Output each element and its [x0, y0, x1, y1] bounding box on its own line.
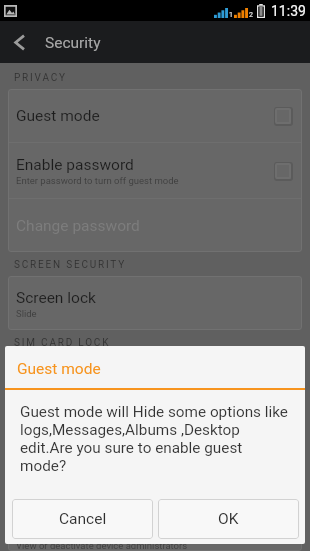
button[interactable]: Screen lock — [8, 276, 302, 330]
button[interactable]: Change password — [8, 199, 302, 252]
staticText: OK — [218, 510, 239, 528]
button[interactable]: Cancel — [12, 499, 153, 539]
staticText: Guest mode — [17, 360, 101, 378]
staticText: View or deactivate device administrators — [16, 540, 188, 551]
staticText: Guest mode will Hide some options like l… — [20, 403, 288, 475]
staticText: Change SIM PIN — [16, 444, 129, 462]
staticText: Enter password to turn off guest mode — [16, 175, 179, 186]
button[interactable]: Guest mode — [8, 89, 302, 142]
staticText: DEVICE ADMINISTRATION — [14, 502, 169, 514]
staticText: 1 — [229, 11, 233, 19]
button[interactable]: Change SIM PIN — [8, 410, 302, 495]
staticText: Set up SIM card lock — [16, 367, 158, 385]
staticText: SIM CARD LOCK — [14, 337, 111, 349]
staticText: Enable password — [16, 156, 134, 174]
staticText: Screen lock — [16, 289, 96, 307]
staticText: SCREEN SECURITY — [14, 259, 126, 271]
staticText: Security — [45, 34, 101, 52]
button[interactable]: Device administrators — [8, 519, 302, 551]
staticText: 2 — [249, 11, 253, 19]
staticText: Change password — [16, 217, 140, 235]
staticText: Lock SIM card — [16, 386, 77, 397]
button[interactable]: Back — [0, 21, 40, 63]
button[interactable]: Enable password — [8, 143, 302, 198]
button[interactable]: OK — [158, 499, 299, 539]
staticText: Slide — [16, 308, 37, 319]
staticText: Cancel — [59, 510, 107, 528]
button[interactable]: Set up SIM card lock — [8, 354, 302, 409]
staticText: Device administrators — [16, 521, 167, 539]
staticText: Guest mode — [16, 107, 100, 125]
staticText: PRIVACY — [14, 72, 67, 84]
staticText: 11:39 — [271, 3, 306, 19]
